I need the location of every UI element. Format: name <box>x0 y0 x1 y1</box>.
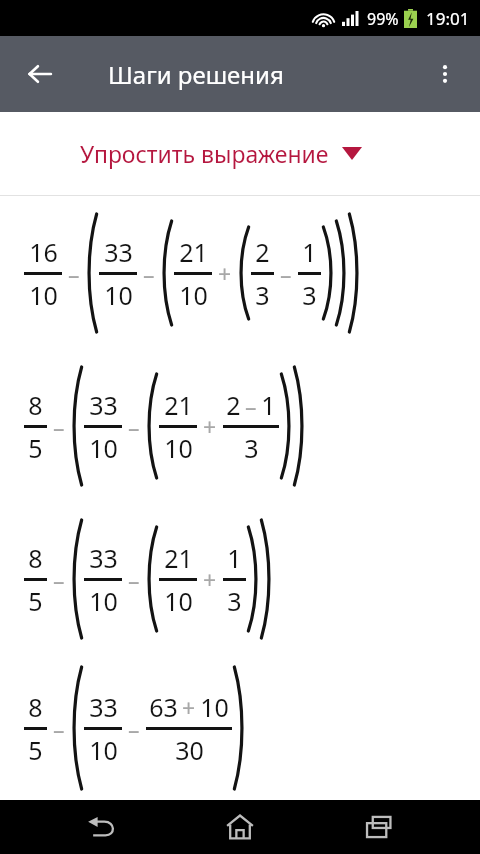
staticText: – <box>53 564 65 595</box>
button[interactable]: 8 <box>0 502 480 655</box>
button[interactable]: Home <box>202 800 278 854</box>
staticText: 99% <box>367 8 399 30</box>
button[interactable]: 8 <box>0 349 480 502</box>
staticText: + <box>218 258 232 289</box>
staticText: 30 <box>175 733 204 767</box>
staticText: + <box>182 692 196 723</box>
staticText: 10 <box>104 278 133 312</box>
staticText: 2 <box>255 235 270 269</box>
button[interactable]: 16 <box>0 196 480 349</box>
staticText: 10 <box>89 733 118 767</box>
staticText: 63 <box>149 690 178 724</box>
staticText: 21 <box>164 388 193 422</box>
staticText: 33 <box>89 541 118 575</box>
staticText: – <box>143 258 155 289</box>
staticText: 3 <box>302 278 317 312</box>
staticText: – <box>128 564 140 595</box>
staticText: 10 <box>29 278 58 312</box>
staticText: 3 <box>255 278 270 312</box>
staticText: 10 <box>164 431 193 465</box>
staticText: 21 <box>164 541 193 575</box>
staticText: 10 <box>179 278 208 312</box>
button[interactable]: 8 <box>0 655 480 800</box>
staticText: – <box>53 713 65 744</box>
staticText: 8 <box>28 388 43 422</box>
staticText: Упростить выражение <box>80 138 329 169</box>
staticText: 5 <box>28 584 43 618</box>
staticText: 5 <box>28 733 43 767</box>
staticText: – <box>280 258 292 289</box>
staticText: – <box>68 258 80 289</box>
staticText: – <box>128 411 140 442</box>
staticText: 8 <box>28 690 43 724</box>
staticText: – <box>53 411 65 442</box>
staticText: 10 <box>89 584 118 618</box>
button[interactable]: Упростить выражение <box>0 112 480 195</box>
staticText: + <box>203 411 217 442</box>
staticText: 10 <box>89 431 118 465</box>
staticText: + <box>203 564 217 595</box>
staticText: 1 <box>227 541 242 575</box>
staticText: – <box>128 713 140 744</box>
staticText: 2 <box>226 388 241 422</box>
button[interactable]: Recent apps <box>341 800 417 854</box>
staticText: 3 <box>244 431 259 465</box>
staticText: 10 <box>164 584 193 618</box>
staticText: 21 <box>179 235 208 269</box>
staticText: 1 <box>302 235 317 269</box>
button[interactable]: More options <box>420 49 470 99</box>
staticText: 3 <box>227 584 242 618</box>
staticText: – <box>245 390 257 421</box>
button[interactable]: Back <box>14 48 66 100</box>
staticText: 19:01 <box>426 7 470 30</box>
button[interactable]: Back <box>63 800 139 854</box>
staticText: Шаги решения <box>108 58 284 91</box>
staticText: 33 <box>89 388 118 422</box>
staticText: 16 <box>29 235 58 269</box>
staticText: 33 <box>89 690 118 724</box>
staticText: 5 <box>28 431 43 465</box>
staticText: 33 <box>104 235 133 269</box>
staticText: 10 <box>200 690 229 724</box>
staticText: 8 <box>28 541 43 575</box>
staticText: 1 <box>261 388 276 422</box>
